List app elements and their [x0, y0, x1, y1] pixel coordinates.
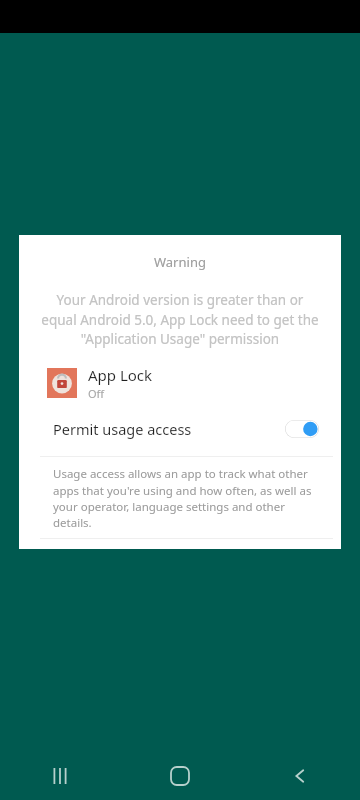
button[interactable]: Back [240, 752, 360, 800]
button[interactable]: Recents [0, 752, 120, 800]
staticText: Warning [154, 253, 206, 271]
staticText: App Lock [88, 365, 153, 385]
button[interactable]: Permit usage access [19, 414, 341, 444]
button[interactable]: App Lock [19, 362, 341, 404]
button[interactable]: Home [120, 752, 240, 800]
staticText: Off [88, 386, 105, 401]
button[interactable]: Permit usage access toggle [285, 420, 319, 438]
staticText: Your Android version is greater than or … [39, 291, 321, 348]
staticText: Usage access allows an app to track what… [53, 466, 319, 530]
staticText: Permit usage access [53, 419, 192, 439]
